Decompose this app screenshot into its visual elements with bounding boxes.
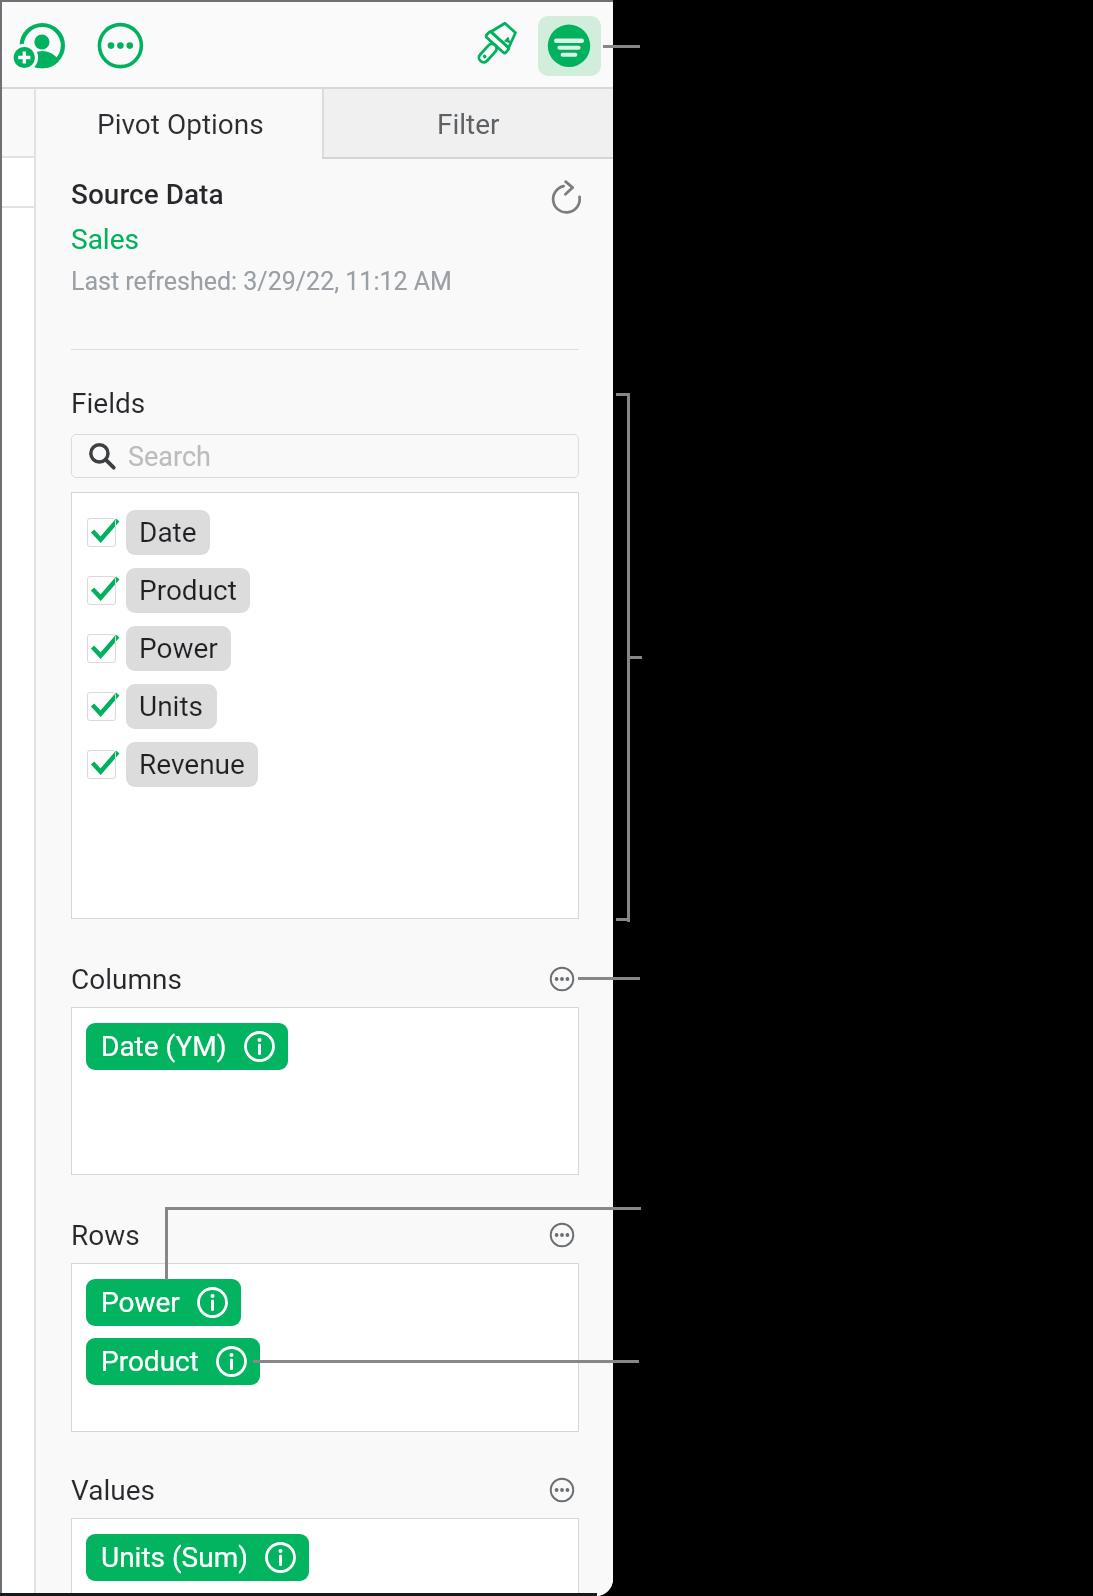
button[interactable]: Power [101,1286,228,1319]
button[interactable]: Add people [5,15,75,85]
button[interactable]: Search [71,434,579,478]
button[interactable]: More options [85,15,155,85]
staticText: Columns [71,963,182,996]
staticText: Last refreshed: 3/29/22, 11:12 AM [71,267,452,296]
staticText: Values [71,1474,155,1507]
staticText: Date (YM) [101,1030,227,1063]
button[interactable]: Paint format [470,19,521,70]
staticText: Power [101,1286,180,1319]
staticText: Pivot Options [97,108,264,141]
button[interactable]: Filter [324,89,613,159]
button[interactable]: Date (YM) [101,1030,275,1063]
button[interactable]: Units (Sum) [101,1541,296,1574]
staticText: Product [101,1345,199,1378]
button[interactable]: Product [139,574,237,607]
staticText: Sales [71,223,139,256]
staticText: Fields [71,387,146,420]
button[interactable]: Toggle Date [87,518,116,547]
button[interactable]: Toggle Units [87,692,116,721]
staticText: Date [139,516,197,549]
staticText: Rows [71,1219,140,1252]
staticText: Power [139,632,218,665]
staticText: Revenue [139,748,245,781]
button[interactable]: Toggle Revenue [87,750,116,779]
staticText: Filter [437,108,500,141]
staticText: Source Data [71,178,224,211]
button[interactable]: Product [101,1345,247,1378]
button[interactable]: Pivot Options [36,89,324,159]
staticText: Units [139,690,204,723]
button[interactable]: Toggle Power [87,634,116,663]
button[interactable]: Pivot table editor [538,16,601,76]
button[interactable]: Refresh [545,175,589,219]
button[interactable]: Columns options [545,962,579,996]
button[interactable]: Date [139,516,197,549]
button[interactable]: Rows options [545,1218,579,1252]
staticText: Product [139,574,237,607]
button[interactable]: Units [139,690,204,723]
button[interactable]: Values options [545,1473,579,1507]
staticText: Units (Sum) [101,1541,248,1574]
button[interactable]: Power [139,632,218,665]
button[interactable]: Revenue [139,748,245,781]
staticText: Search [128,441,211,473]
button[interactable]: Toggle Product [87,576,116,605]
